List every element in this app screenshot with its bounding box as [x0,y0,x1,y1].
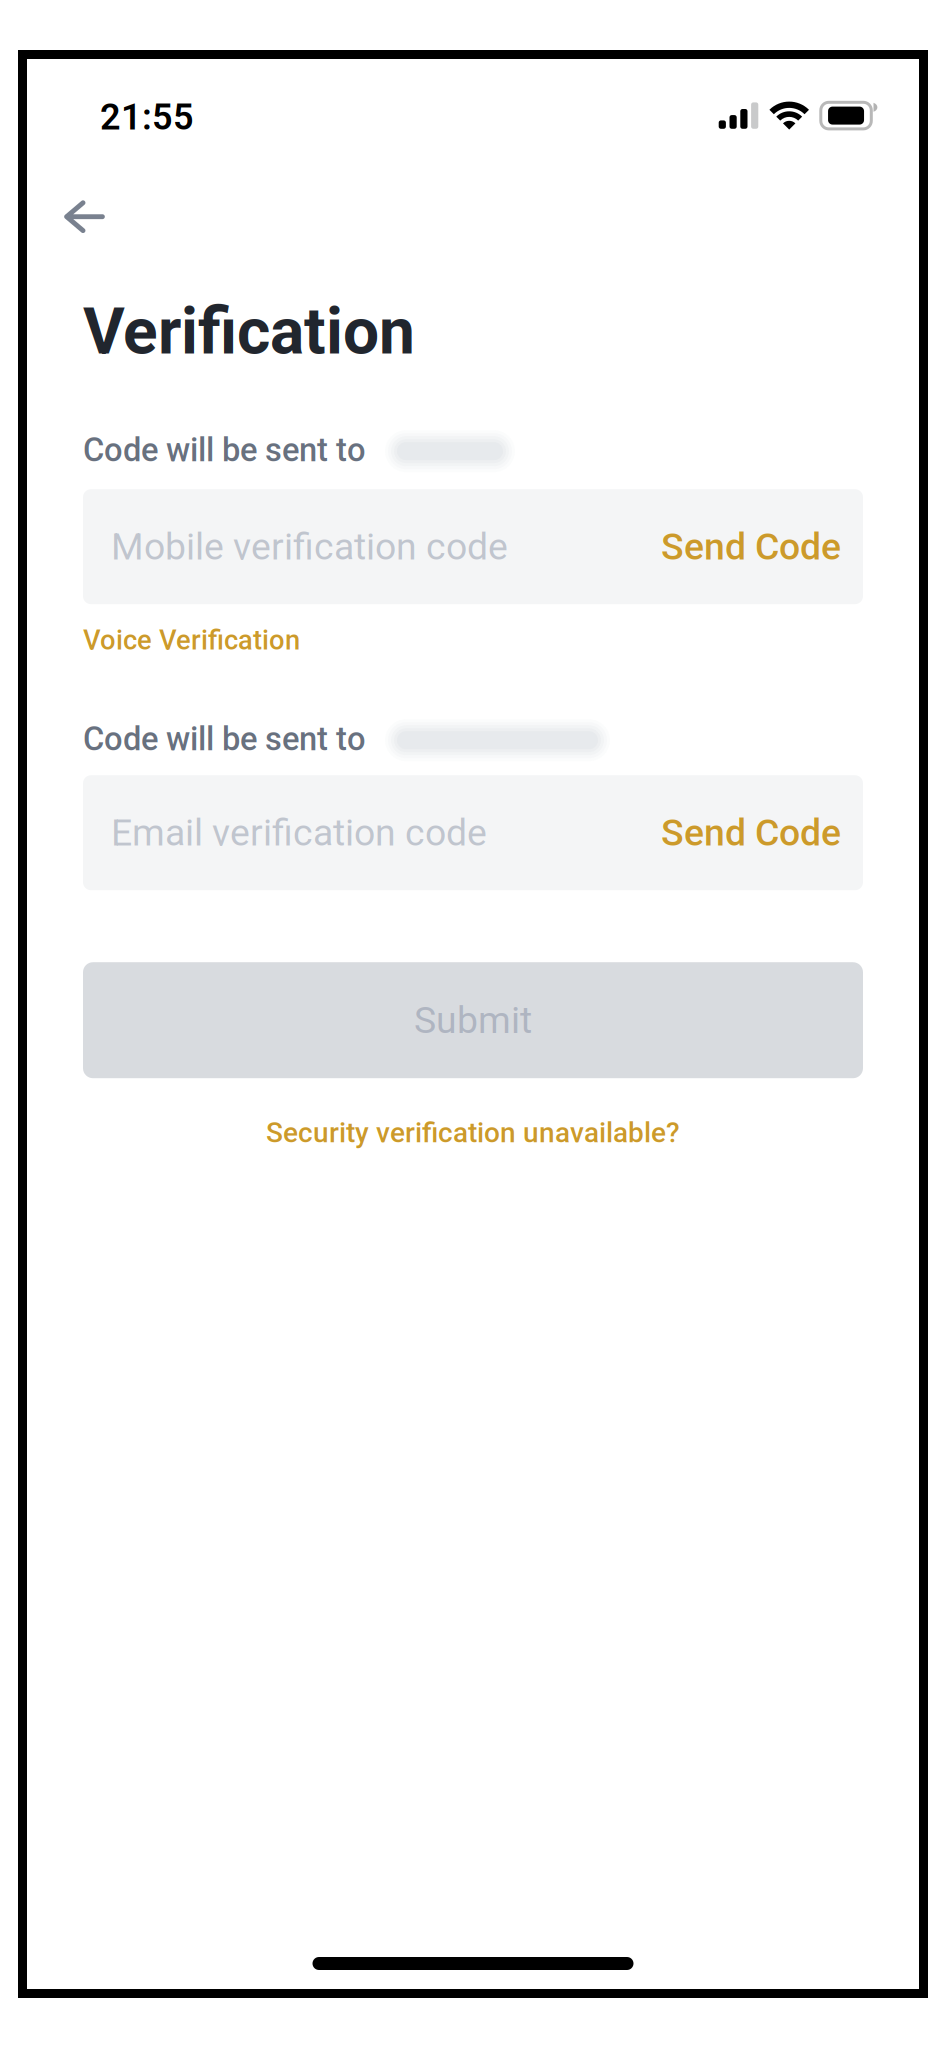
staticText: Email verification code [111,811,487,854]
button[interactable]: Back [27,188,165,245]
button[interactable]: Voice Verification [27,618,356,662]
staticText: Code will be sent to [83,720,366,758]
staticText: Security verification unavailable? [266,1116,680,1149]
staticText: Voice Verification [83,624,300,656]
staticText: Submit [414,998,532,1042]
staticText: Code will be sent to [83,431,366,469]
button[interactable]: Send Code [661,811,841,854]
staticText: Send Code [661,525,841,568]
staticText: 21:55 [100,96,194,138]
staticText: Verification [83,294,415,369]
button[interactable]: Send Code [661,525,841,568]
button[interactable]: Submit [27,962,919,1078]
staticText: Send Code [661,811,841,854]
button[interactable]: Security verification unavailable? [27,1108,919,1157]
staticText: Mobile verification code [111,525,508,568]
